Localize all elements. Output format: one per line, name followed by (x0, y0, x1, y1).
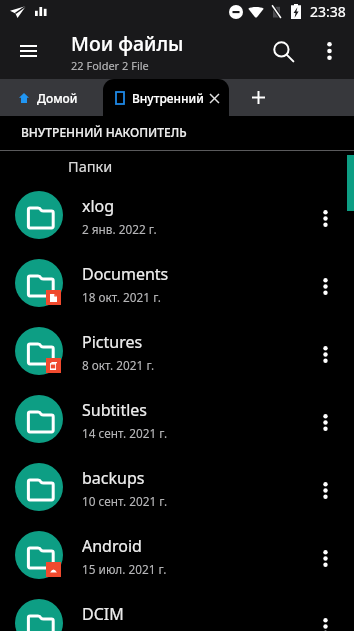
staticText: backups (82, 467, 145, 489)
button[interactable]: More options (303, 536, 347, 580)
button[interactable]: More options (303, 196, 347, 240)
staticText: 18 окт. 2021 г. (82, 289, 161, 305)
staticText: Android (82, 535, 142, 557)
button[interactable]: More options (303, 264, 347, 308)
button[interactable]: More options (307, 29, 351, 73)
staticText: Папки (68, 156, 113, 176)
button[interactable]: DCIM (0, 589, 354, 631)
staticText: 10 сент. 2021 г. (82, 493, 168, 509)
button[interactable]: Search (261, 29, 305, 73)
button[interactable]: Documents (0, 249, 354, 317)
staticText: 14 сент. 2021 г. (82, 425, 168, 441)
button[interactable]: backups (0, 453, 354, 521)
staticText: Subtitles (82, 399, 148, 421)
staticText: Мои файлы (71, 30, 184, 57)
button[interactable]: Subtitles (0, 385, 354, 453)
button[interactable]: More options (303, 604, 347, 631)
staticText: DCIM (82, 603, 124, 625)
button[interactable]: xlog (0, 181, 354, 249)
button[interactable]: Android (0, 521, 354, 589)
button[interactable]: Pictures (0, 317, 354, 385)
staticText: Домой (37, 90, 78, 106)
staticText: 22 Folder 2 File (71, 58, 149, 73)
staticText: 8 окт. 2021 г. (82, 357, 155, 373)
button[interactable]: More options (303, 400, 347, 444)
staticText: xlog (82, 195, 115, 217)
staticText: Внутренний (132, 90, 204, 106)
staticText: 2 янв. 2022 г. (82, 221, 157, 237)
button[interactable]: Menu (6, 29, 50, 73)
staticText: ВНУТРЕННИЙ НАКОПИТЕЛЬ (21, 124, 187, 140)
staticText: Documents (82, 263, 169, 285)
button[interactable]: More options (303, 332, 347, 376)
staticText: 23:38 (310, 2, 346, 21)
button[interactable]: Close tab (205, 89, 223, 107)
button[interactable]: More options (303, 468, 347, 512)
button[interactable]: Домой (0, 79, 103, 116)
staticText: 15 июл. 2021 г. (82, 561, 167, 577)
button[interactable]: Внутренний (103, 79, 229, 116)
button[interactable]: New tab (240, 79, 276, 116)
staticText: Pictures (82, 331, 143, 353)
